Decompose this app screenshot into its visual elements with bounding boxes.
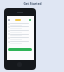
- staticText: Get Started: [23, 2, 42, 6]
- button[interactable]: Get started: [8, 48, 32, 51]
- button[interactable]: Menu: [8, 19, 10, 21]
